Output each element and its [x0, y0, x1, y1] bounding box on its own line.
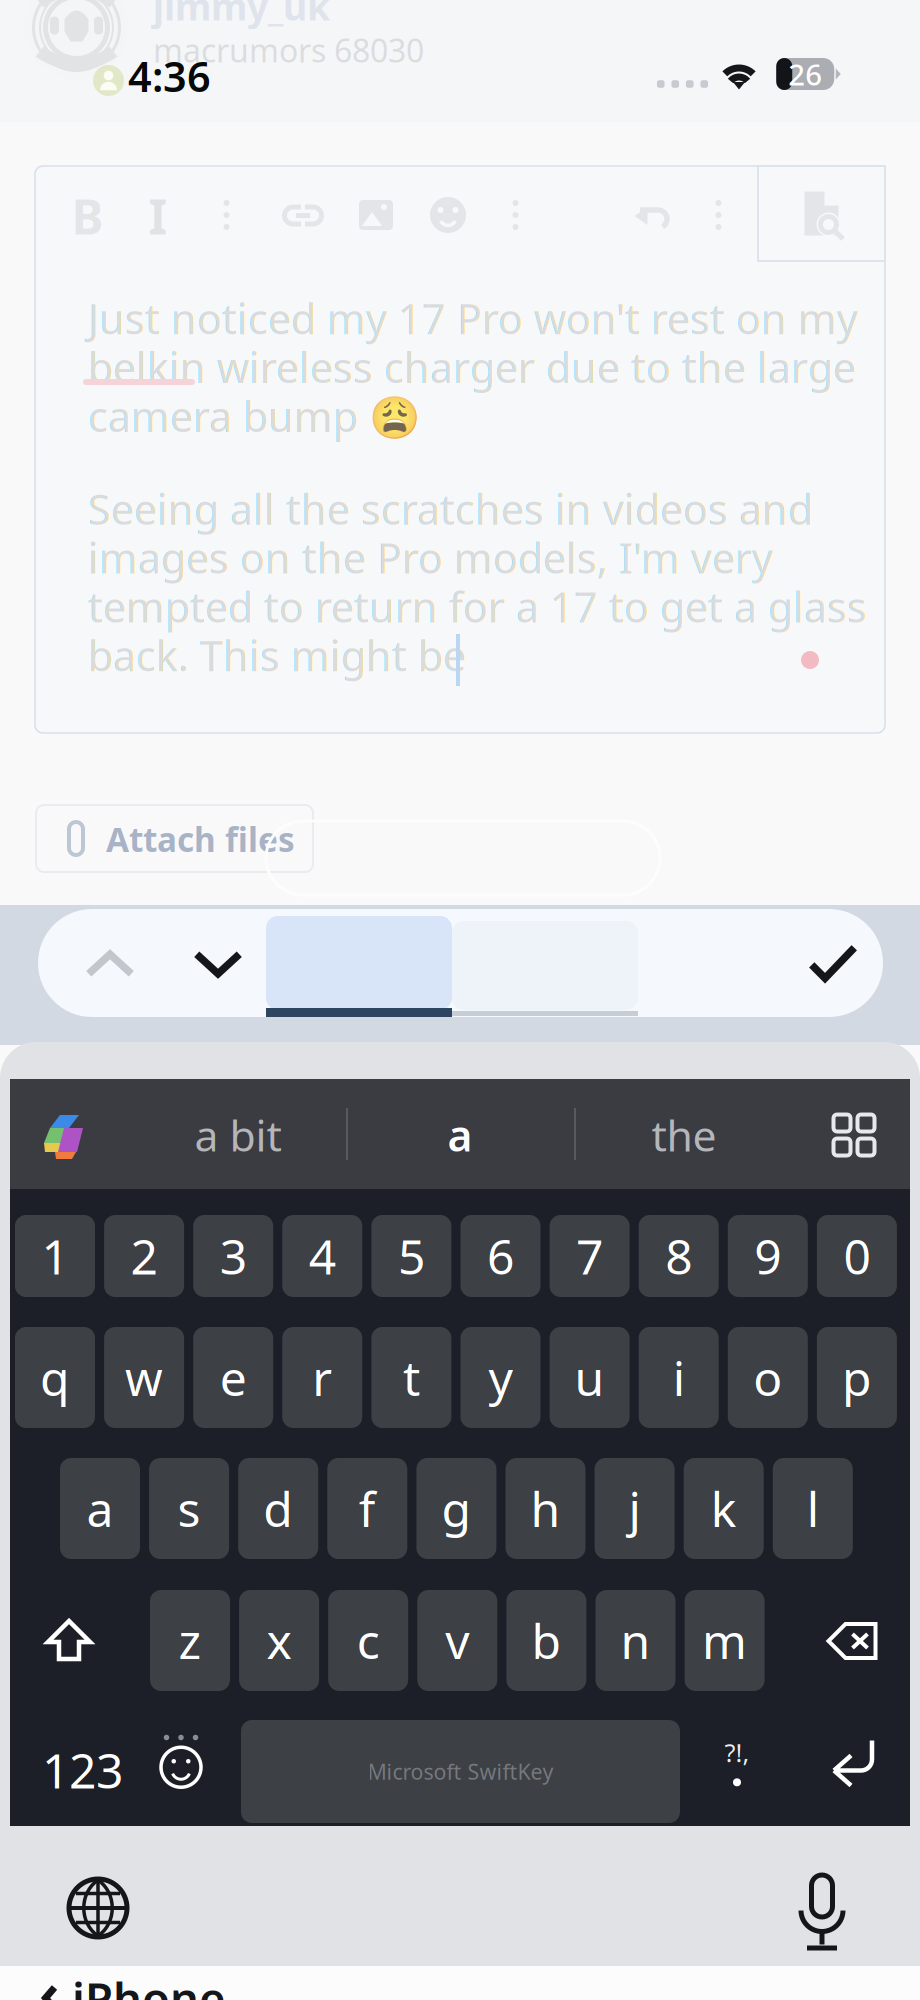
staticText: iPhone	[72, 1968, 226, 2000]
staticText: q	[40, 1346, 70, 1409]
button[interactable]: Microsoft SwiftKey	[241, 1720, 680, 1823]
staticText: x	[267, 1609, 292, 1672]
button[interactable]: p	[817, 1327, 897, 1428]
staticText: jimmy_uk	[153, 0, 330, 31]
button[interactable]: 123	[30, 1735, 135, 1805]
staticText: 4:36	[128, 49, 211, 103]
staticText: I	[148, 184, 167, 248]
staticText: Just noticed my 17 Pro won't rest on my …	[88, 291, 858, 443]
staticText: Microsoft SwiftKey	[367, 1757, 553, 1786]
staticText: Seeing all the scratches in videos and i…	[88, 481, 867, 683]
button[interactable]: Done	[788, 936, 878, 990]
button[interactable]: Switch keyboard	[66, 1876, 130, 1940]
staticText: z	[178, 1609, 201, 1672]
staticText: w	[125, 1346, 163, 1409]
button[interactable]: 8	[639, 1215, 719, 1297]
button[interactable]: b	[506, 1590, 586, 1691]
button[interactable]: w	[104, 1327, 184, 1428]
button[interactable]: 3	[193, 1215, 273, 1297]
button[interactable]: r	[282, 1327, 362, 1428]
button[interactable]: 5	[371, 1215, 451, 1297]
button[interactable]: d	[238, 1458, 318, 1559]
button[interactable]: m	[685, 1590, 765, 1691]
staticText: o	[753, 1346, 782, 1409]
button[interactable]: 2	[104, 1215, 184, 1297]
button[interactable]: a	[60, 1458, 140, 1559]
button[interactable]: j	[595, 1458, 675, 1559]
button[interactable]: s	[149, 1458, 229, 1559]
button[interactable]: n	[595, 1590, 675, 1691]
staticText: j	[629, 1477, 641, 1540]
button[interactable]: 0	[817, 1215, 897, 1297]
button[interactable]: h	[505, 1458, 585, 1559]
staticText: a bit	[194, 1107, 281, 1163]
button[interactable]: k	[684, 1458, 764, 1559]
button[interactable]: Backspace	[808, 1618, 896, 1664]
button[interactable]: Previous field	[62, 940, 158, 988]
button[interactable]: Keyboard modes	[833, 1114, 874, 1155]
button[interactable]: v	[417, 1590, 497, 1691]
button[interactable]: i	[639, 1327, 719, 1428]
staticText: y	[488, 1346, 512, 1409]
staticText: 0	[843, 1224, 870, 1288]
button[interactable]: y	[460, 1327, 540, 1428]
button[interactable]: q	[15, 1327, 95, 1428]
button[interactable]: Shift	[24, 1614, 114, 1666]
staticText: 26	[788, 54, 822, 93]
button[interactable]: a	[350, 1112, 570, 1158]
button[interactable]: t	[371, 1327, 451, 1428]
button[interactable]: 7	[550, 1215, 630, 1297]
button[interactable]: l	[773, 1458, 853, 1559]
button[interactable]: 9	[728, 1215, 808, 1297]
button[interactable]: B	[70, 194, 105, 238]
staticText: 9	[754, 1224, 781, 1288]
staticText: v	[445, 1609, 469, 1672]
button[interactable]: the	[574, 1112, 794, 1158]
button[interactable]: 6	[460, 1215, 540, 1297]
button[interactable]: Preview	[758, 166, 885, 261]
staticText: f	[359, 1477, 376, 1540]
button[interactable]: 1	[15, 1215, 95, 1297]
staticText: ?!,	[724, 1736, 749, 1769]
button[interactable]: u	[550, 1327, 630, 1428]
staticText: i	[673, 1346, 685, 1409]
button[interactable]: More insert options	[503, 198, 528, 232]
button[interactable]: o	[728, 1327, 808, 1428]
staticText: macrumors 68030	[153, 29, 424, 71]
staticText: t	[403, 1346, 420, 1409]
button[interactable]: Return	[828, 1736, 878, 1790]
button[interactable]: x	[239, 1590, 319, 1691]
button[interactable]: 4	[282, 1215, 362, 1297]
button[interactable]: Next field	[170, 940, 266, 988]
staticText: k	[711, 1477, 737, 1540]
staticText: B	[71, 184, 103, 248]
staticText: 6	[487, 1224, 514, 1288]
staticText: s	[178, 1477, 201, 1540]
button[interactable]: Insert emoji	[430, 197, 466, 233]
staticText: m	[702, 1609, 747, 1672]
button[interactable]: Copilot	[43, 1112, 85, 1160]
button[interactable]: Emoji	[152, 1730, 210, 1792]
button[interactable]: Insert image	[359, 200, 393, 230]
button[interactable]: iPhone	[40, 1978, 360, 2000]
staticText: Attach files	[106, 817, 295, 861]
button[interactable]: c	[328, 1590, 408, 1691]
button[interactable]: e	[193, 1327, 273, 1428]
staticText: e	[220, 1346, 247, 1409]
button[interactable]: More text styles	[214, 198, 239, 232]
button[interactable]: Dictate	[798, 1872, 846, 1944]
staticText: 8	[665, 1224, 692, 1288]
button[interactable]: Undo	[634, 201, 674, 231]
button[interactable]: g	[416, 1458, 496, 1559]
staticText: 7	[576, 1224, 603, 1288]
button[interactable]: a bit	[128, 1112, 348, 1158]
button[interactable]: More options	[706, 198, 731, 232]
staticText: l	[807, 1477, 819, 1540]
button[interactable]: I	[142, 194, 174, 238]
button[interactable]: Attach files	[36, 805, 313, 872]
staticText: 5	[398, 1224, 425, 1288]
button[interactable]: f	[327, 1458, 407, 1559]
button[interactable]: Punctuation	[706, 1736, 768, 1786]
button[interactable]: z	[150, 1590, 230, 1691]
button[interactable]: Insert link	[283, 204, 323, 227]
